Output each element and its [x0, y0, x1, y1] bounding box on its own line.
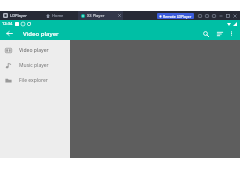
button[interactable]: More options [227, 29, 236, 38]
staticText: Music player [19, 62, 49, 69]
staticText: X3 Player [87, 13, 105, 18]
button[interactable]: Back [4, 28, 15, 39]
button[interactable]: Sort [214, 28, 225, 39]
staticText: 12:34 [2, 21, 13, 26]
staticText: Video player [19, 47, 49, 54]
button[interactable]: Home [46, 13, 64, 18]
button[interactable]: Toolbar action [205, 14, 209, 18]
button[interactable]: Close [233, 14, 237, 18]
staticText: Please transfer some files to your devic… [10, 44, 170, 51]
button[interactable]: File explorer [0, 73, 70, 88]
button[interactable]: Minimize [219, 14, 223, 18]
button[interactable]: Video player [0, 43, 70, 58]
staticText: Video player [23, 30, 59, 38]
button[interactable]: Music player [0, 58, 70, 73]
staticText: File explorer [19, 77, 48, 84]
button[interactable]: X3 Player [78, 11, 123, 20]
staticText: Home [52, 13, 64, 18]
button[interactable]: Toolbar action [212, 14, 216, 18]
button[interactable]: Close tab [118, 14, 121, 17]
button[interactable]: Toolbar action [198, 14, 202, 18]
button[interactable]: Search [200, 28, 211, 39]
button[interactable]: Maximize [226, 14, 230, 18]
staticText: Remote LDPlayer [163, 14, 192, 19]
button[interactable]: Remote LDPlayer [159, 13, 192, 19]
staticText: LDPlayer [10, 13, 27, 18]
